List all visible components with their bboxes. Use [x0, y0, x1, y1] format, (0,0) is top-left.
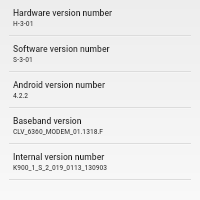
staticText: K900_1_S_2_019_0113_130903 [13, 164, 108, 172]
button[interactable]: Internal version number [0, 144, 200, 180]
staticText: 4.2.2 [13, 92, 29, 100]
staticText: Internal version number [13, 152, 105, 162]
button[interactable]: Baseband version [0, 108, 200, 144]
button[interactable]: Hardware version number [0, 0, 200, 36]
button[interactable]: Android version number [0, 72, 200, 108]
staticText: Software version number [13, 44, 110, 54]
staticText: H-3-01 [13, 20, 34, 28]
staticText: CLV_6360_MODEM_01.1318.F [13, 128, 103, 136]
staticText: Hardware version number [13, 8, 113, 18]
button[interactable]: Software version number [0, 36, 200, 72]
staticText: Android version number [13, 80, 105, 90]
staticText: Baseband version [13, 116, 82, 126]
staticText: S-3-01 [13, 56, 33, 64]
